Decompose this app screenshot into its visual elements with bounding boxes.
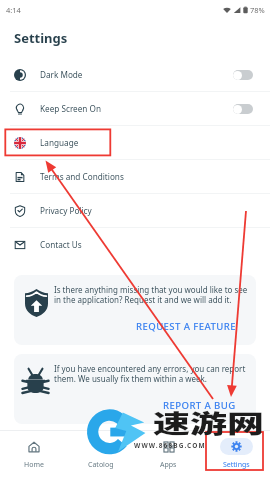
staticText: Language xyxy=(40,137,79,148)
button[interactable]: Toggle xyxy=(233,70,253,80)
staticText: Is there anything missing that you would… xyxy=(54,284,250,305)
staticText: Settings xyxy=(223,460,250,470)
staticText: Privacy Policy xyxy=(40,205,92,216)
staticText: Apps xyxy=(160,460,177,470)
staticText: WWW.868BG.COM xyxy=(134,441,206,450)
button[interactable]: Toggle xyxy=(233,104,253,114)
button[interactable]: Keep Screen On xyxy=(0,92,270,125)
button[interactable]: If you have encountered any errors, you … xyxy=(14,354,256,424)
staticText: Keep Screen On xyxy=(40,103,101,114)
staticText: 4:14 xyxy=(6,5,21,15)
staticText: If you have encountered any errors, you … xyxy=(54,363,250,384)
button[interactable]: Contact Us xyxy=(0,228,270,261)
button[interactable]: Settings xyxy=(202,431,270,480)
button[interactable]: Terms and Conditions xyxy=(0,160,270,193)
button[interactable]: Catolog xyxy=(67,431,134,480)
button[interactable]: REQUEST A FEATURE xyxy=(136,320,256,345)
button[interactable]: Language xyxy=(0,126,270,159)
button[interactable]: Apps xyxy=(134,431,202,480)
staticText: Contact Us xyxy=(40,239,82,250)
staticText: Terms and Conditions xyxy=(40,171,124,182)
staticText: Dark Mode xyxy=(40,69,83,80)
staticText: 速游网 xyxy=(153,405,265,441)
button[interactable]: Home xyxy=(0,431,67,480)
button[interactable]: Dark Mode xyxy=(0,58,270,91)
staticText: 78% xyxy=(250,5,265,15)
staticText: Home xyxy=(24,460,44,470)
staticText: Catolog xyxy=(88,460,114,470)
button[interactable]: Privacy Policy xyxy=(0,194,270,227)
button[interactable]: Is there anything missing that you would… xyxy=(14,275,256,345)
staticText: Settings xyxy=(14,29,68,47)
button[interactable]: REPORT A BUG xyxy=(163,399,256,424)
